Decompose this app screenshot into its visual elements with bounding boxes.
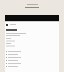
- button[interactable]: [5, 59, 59, 62]
- button[interactable]: [5, 53, 59, 56]
- button[interactable]: [5, 56, 59, 59]
- button[interactable]: [5, 62, 59, 65]
- button[interactable]: [5, 65, 59, 68]
- button[interactable]: Menu: [5, 23, 59, 26]
- button[interactable]: [5, 50, 59, 53]
